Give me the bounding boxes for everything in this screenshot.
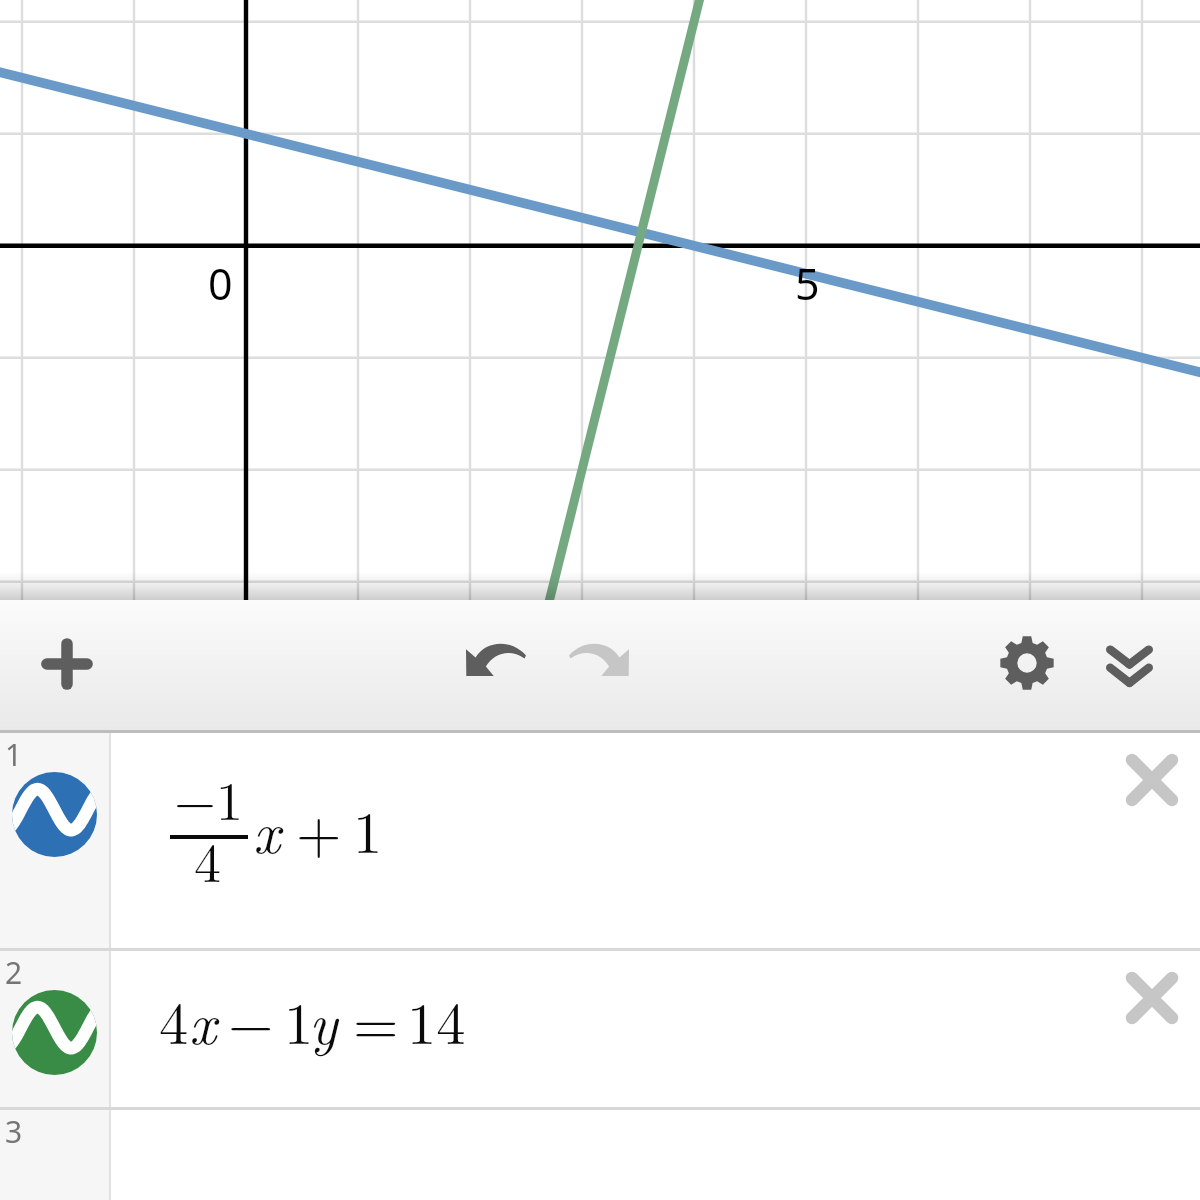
staticText: 1 xyxy=(5,734,23,775)
staticText: 14 xyxy=(407,978,466,1061)
staticText: 4 xyxy=(159,978,189,1061)
staticText: 0 xyxy=(208,254,233,313)
staticText: x xyxy=(189,978,217,1061)
button[interactable]: Delete expression xyxy=(1110,956,1194,1040)
staticText: 3 xyxy=(5,1111,23,1152)
staticText: x xyxy=(253,787,281,870)
button[interactable]: Undo xyxy=(454,617,538,701)
staticText: 4 xyxy=(194,821,221,898)
button[interactable]: Add expression xyxy=(25,622,109,706)
staticText: y xyxy=(309,978,338,1061)
staticText: − xyxy=(228,978,274,1061)
staticText: 5 xyxy=(795,254,820,313)
button[interactable]: 1 xyxy=(0,733,1200,948)
staticText: 2 xyxy=(5,952,23,993)
button[interactable]: 3 xyxy=(0,1110,1200,1200)
staticText: −1 xyxy=(174,759,244,836)
button[interactable]: Redo xyxy=(557,617,641,701)
button[interactable]: Settings xyxy=(985,621,1069,705)
button[interactable]: Delete expression xyxy=(1110,738,1194,822)
staticText: 1 xyxy=(284,978,314,1061)
staticText: = xyxy=(353,978,399,1061)
button[interactable]: 2 xyxy=(0,951,1200,1107)
staticText: + xyxy=(296,787,342,870)
staticText: 1 xyxy=(353,787,383,870)
button[interactable]: Collapse keypad xyxy=(1087,624,1171,708)
